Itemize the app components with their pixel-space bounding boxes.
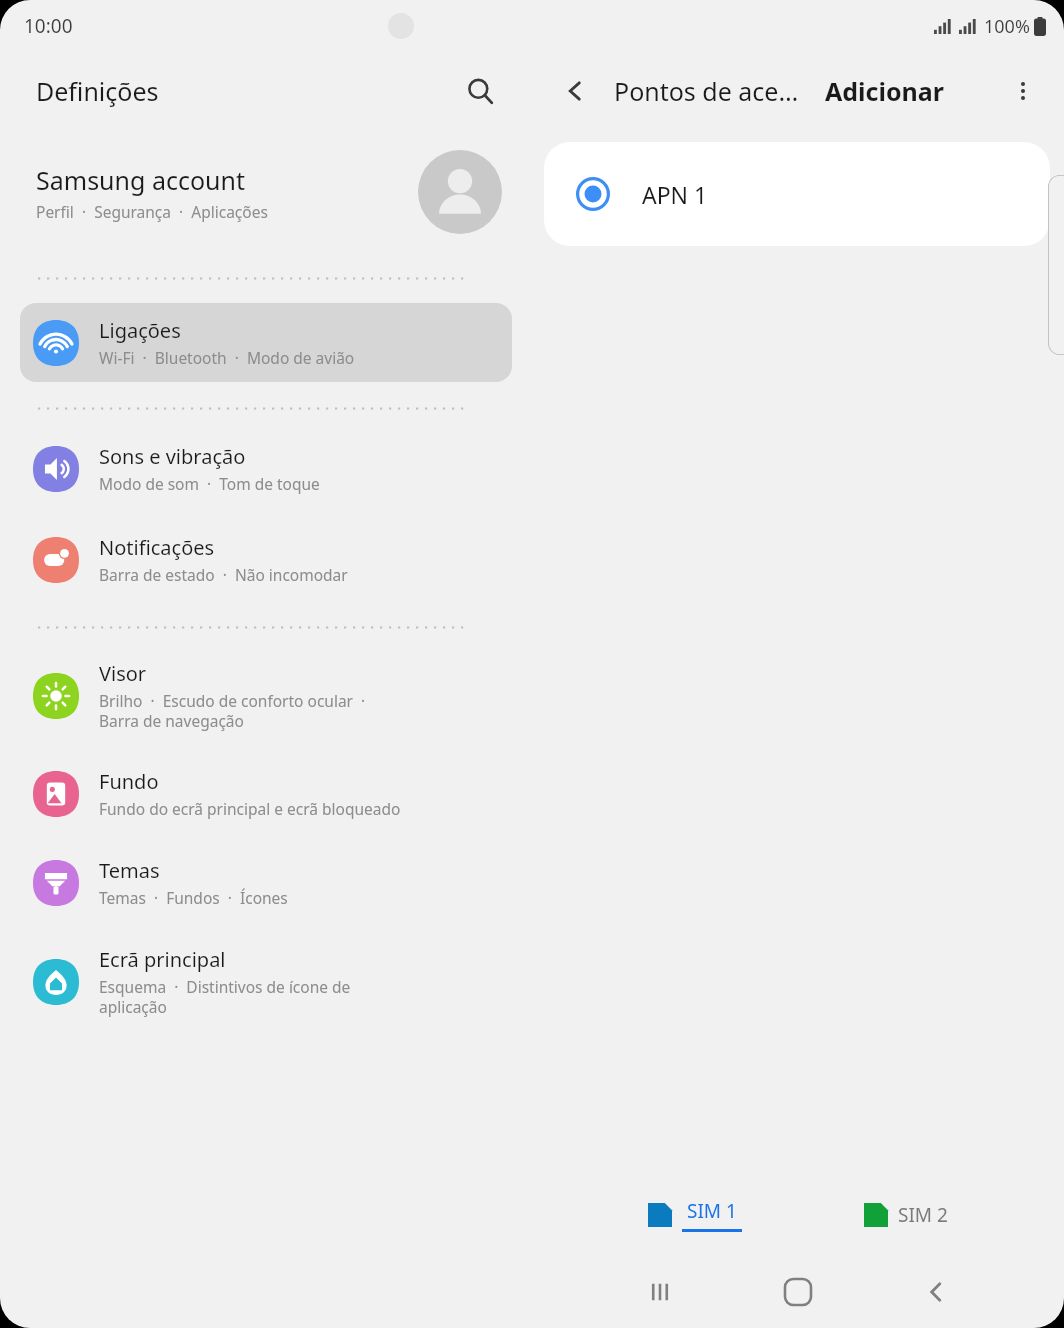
staticText: Samsung account xyxy=(36,163,245,197)
button[interactable]: Edge panel handle xyxy=(1048,175,1064,355)
staticText: Notificações xyxy=(99,534,215,561)
button[interactable]: Back xyxy=(554,70,596,112)
button[interactable]: Adicionar xyxy=(821,68,948,114)
button[interactable]: Back xyxy=(899,1256,973,1328)
staticText: Perfil · Segurança · Aplicações xyxy=(36,201,268,222)
staticText: Brilho · Escudo de conforto ocular · Bar… xyxy=(99,690,366,732)
button[interactable]: Home xyxy=(761,1256,835,1328)
staticText: Fundo do ecrã principal e ecrã bloqueado xyxy=(99,798,401,819)
staticText: 10:00 xyxy=(24,13,73,39)
button[interactable]: Ecrã principal xyxy=(20,932,512,1032)
staticText: Sons e vibração xyxy=(99,443,246,470)
staticText: Temas xyxy=(99,857,160,884)
staticText: Pontos de ace… xyxy=(614,74,799,108)
staticText: Temas · Fundos · Ícones xyxy=(99,887,288,908)
staticText: Visor xyxy=(99,660,147,687)
button[interactable]: Visor xyxy=(20,646,512,746)
button[interactable]: Samsung account xyxy=(0,130,532,256)
button[interactable]: SIM 1 xyxy=(642,1192,748,1238)
button[interactable]: More options xyxy=(1002,70,1044,112)
button[interactable]: Notificações xyxy=(20,520,512,599)
staticText: Esquema · Distintivos de ícone de aplica… xyxy=(99,976,351,1018)
button[interactable]: Recents xyxy=(623,1256,697,1328)
button[interactable]: Search xyxy=(458,69,502,113)
staticText: SIM 2 xyxy=(898,1202,948,1228)
button[interactable]: Fundo xyxy=(20,754,512,833)
button[interactable]: SIM 2 xyxy=(858,1196,954,1234)
button[interactable]: Sons e vibração xyxy=(20,429,512,508)
staticText: Wi-Fi · Bluetooth · Modo de avião xyxy=(99,347,355,368)
button[interactable]: Temas xyxy=(20,843,512,922)
staticText: Ecrã principal xyxy=(99,946,226,973)
staticText: Barra de estado · Não incomodar xyxy=(99,564,348,585)
button[interactable]: Ligações xyxy=(20,303,512,382)
staticText: SIM 1 xyxy=(687,1198,737,1224)
staticText: Fundo xyxy=(99,768,159,795)
staticText: 100% xyxy=(984,14,1030,39)
staticText: Ligações xyxy=(99,317,181,344)
staticText: APN 1 xyxy=(642,179,708,210)
staticText: Modo de som · Tom de toque xyxy=(99,473,320,494)
staticText: Adicionar xyxy=(825,74,944,108)
staticText: Definições xyxy=(36,74,159,108)
button[interactable]: APN 1 xyxy=(544,142,1050,246)
